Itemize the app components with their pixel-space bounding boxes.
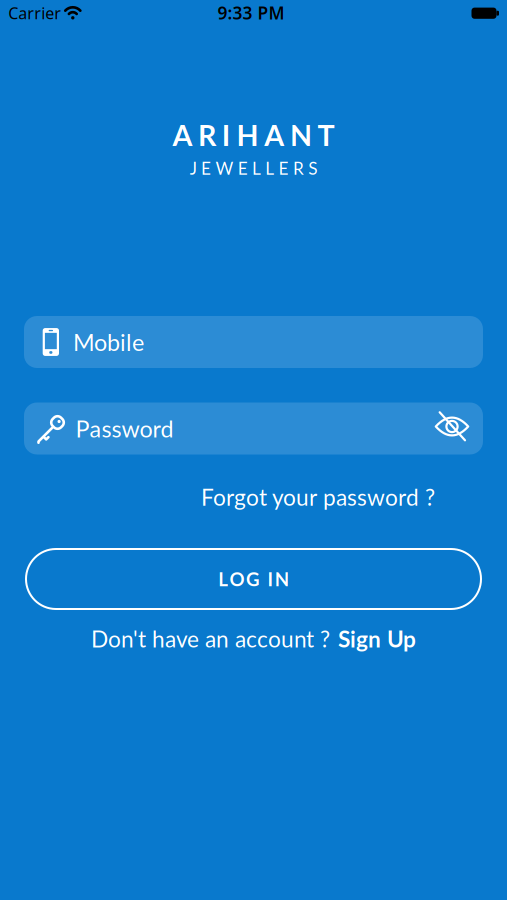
button[interactable]: Forgot your password ? bbox=[201, 483, 435, 511]
staticText: I bbox=[222, 118, 231, 152]
staticText: O bbox=[230, 568, 245, 590]
button[interactable]: Show password bbox=[434, 411, 469, 441]
button[interactable]: Password bbox=[24, 402, 483, 454]
staticText: E bbox=[238, 158, 248, 178]
staticText: T bbox=[318, 118, 335, 152]
staticText: S bbox=[308, 158, 317, 178]
staticText: Don't have an account ? bbox=[91, 625, 330, 652]
staticText: J bbox=[190, 158, 197, 178]
staticText: R bbox=[293, 158, 304, 178]
staticText: H bbox=[236, 118, 258, 152]
staticText: L bbox=[265, 158, 274, 178]
staticText: W bbox=[215, 158, 233, 178]
staticText: A bbox=[172, 118, 192, 152]
staticText: Sign Up bbox=[338, 625, 416, 652]
staticText: Carrier bbox=[8, 2, 61, 24]
staticText: N bbox=[275, 568, 289, 590]
staticText: E bbox=[279, 158, 289, 178]
button[interactable]: Mobile bbox=[24, 316, 483, 368]
staticText: Password bbox=[75, 414, 173, 442]
staticText: 9:33 PM bbox=[217, 1, 284, 24]
staticText: I bbox=[267, 568, 273, 590]
staticText: E bbox=[201, 158, 211, 178]
staticText: Forgot your password ? bbox=[201, 483, 435, 511]
button[interactable]: L bbox=[25, 548, 482, 610]
staticText: N bbox=[290, 118, 312, 152]
staticText: G bbox=[246, 568, 260, 590]
staticText: Mobile bbox=[73, 328, 144, 356]
staticText: R bbox=[198, 118, 216, 152]
button[interactable]: Sign Up bbox=[338, 625, 416, 652]
staticText: L bbox=[218, 568, 228, 590]
staticText: A bbox=[264, 118, 284, 152]
staticText: L bbox=[252, 158, 261, 178]
